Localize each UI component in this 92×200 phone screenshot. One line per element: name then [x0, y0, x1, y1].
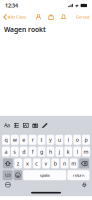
staticText: k [67, 148, 70, 155]
staticText: n [63, 160, 66, 167]
staticText: return [73, 172, 84, 178]
staticText: w [13, 136, 17, 143]
button[interactable]: Opmaak [4, 122, 10, 129]
button[interactable]: u [55, 135, 63, 145]
button[interactable]: o [73, 135, 81, 145]
button[interactable]: b [51, 158, 59, 168]
button[interactable]: y [47, 135, 54, 145]
button[interactable]: Lijst [13, 122, 19, 128]
staticText: t [40, 136, 42, 143]
button[interactable]: Shift [3, 158, 13, 168]
button[interactable]: r [29, 135, 36, 145]
button[interactable]: Alle Clans [3, 14, 26, 20]
staticText: Wagen rookt [4, 25, 46, 34]
staticText: q [4, 136, 7, 143]
button[interactable]: m [82, 147, 90, 157]
staticText: v [44, 160, 47, 167]
button[interactable]: Emoji [14, 170, 22, 180]
button[interactable]: Meldingen [60, 14, 66, 20]
staticText: z [17, 160, 20, 167]
staticText: spatie [40, 172, 50, 178]
staticText: Aa [4, 122, 10, 129]
button[interactable]: s [11, 147, 19, 157]
staticText: x [26, 160, 29, 167]
staticText: m [71, 160, 76, 167]
staticText: s [13, 148, 16, 155]
button[interactable]: Camera [32, 122, 38, 128]
staticText: h [49, 148, 52, 155]
button[interactable]: Toetsenbord wisselen [5, 182, 11, 188]
button[interactable]: Leden [35, 14, 41, 20]
button[interactable]: w [11, 135, 19, 145]
button[interactable]: j [55, 147, 63, 157]
button[interactable]: k [64, 147, 72, 157]
button[interactable]: d [20, 147, 28, 157]
button[interactable]: Tekenen [42, 122, 48, 128]
button[interactable]: spatie [23, 170, 66, 180]
staticText: r [32, 136, 34, 143]
button[interactable]: t [38, 135, 45, 145]
staticText: Alle Clans [8, 14, 26, 20]
button[interactable]: Dicteren [82, 182, 87, 188]
staticText: l [77, 148, 78, 155]
staticText: y [49, 136, 52, 143]
staticText: e [22, 136, 25, 143]
staticText: i [68, 136, 69, 143]
button[interactable]: e [20, 135, 28, 145]
button[interactable]: Gereed [76, 14, 89, 20]
button[interactable]: q [2, 135, 10, 145]
button[interactable]: a [2, 147, 10, 157]
staticText: d [22, 148, 25, 155]
button[interactable]: return [67, 170, 89, 180]
staticText: c [35, 160, 38, 167]
button[interactable]: Foto [23, 122, 29, 128]
button[interactable]: f [29, 147, 36, 157]
button[interactable]: m [70, 158, 78, 168]
button[interactable]: n [61, 158, 68, 168]
staticText: u [58, 136, 61, 143]
button[interactable]: p [82, 135, 90, 145]
staticText: b [54, 160, 57, 167]
staticText: 12:34 [5, 2, 18, 9]
button[interactable]: Wis [79, 158, 89, 168]
staticText: f [32, 148, 34, 155]
button[interactable]: l [73, 147, 81, 157]
staticText: o [76, 136, 79, 143]
button[interactable]: c [33, 158, 41, 168]
staticText: 123 [5, 172, 11, 178]
button[interactable]: h [47, 147, 54, 157]
button[interactable]: Bijlagen [48, 14, 54, 20]
staticText: g [40, 148, 43, 155]
staticText: p [84, 136, 87, 143]
staticText: j [59, 148, 60, 155]
button[interactable]: v [42, 158, 50, 168]
button[interactable]: 123 [3, 170, 13, 180]
staticText: a [4, 148, 7, 155]
staticText: m [83, 148, 88, 155]
button[interactable]: g [38, 147, 45, 157]
button[interactable]: z [14, 158, 22, 168]
button[interactable]: i [64, 135, 72, 145]
staticText: Gereed [76, 14, 89, 20]
button[interactable]: x [24, 158, 31, 168]
